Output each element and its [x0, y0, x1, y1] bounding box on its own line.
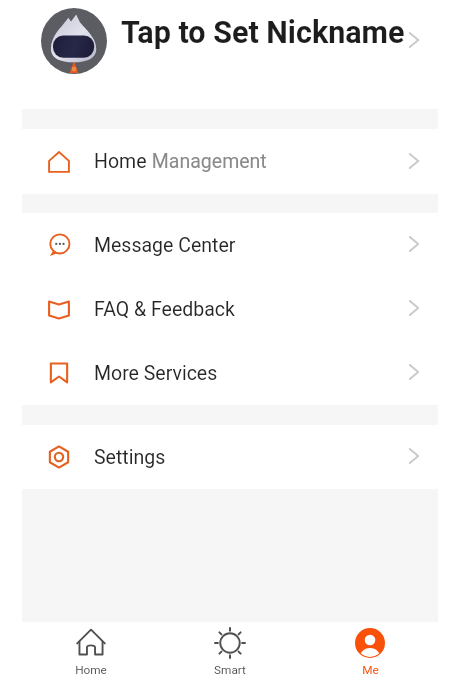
- button[interactable]: Settings: [0, 425, 461, 489]
- button[interactable]: Tap to Set Nickname: [0, 0, 461, 82]
- staticText: Smart: [214, 663, 246, 677]
- button[interactable]: Message Center: [0, 213, 461, 277]
- staticText: Message Center: [94, 234, 236, 257]
- staticText: Management: [147, 150, 267, 173]
- button[interactable]: Me: [300, 622, 440, 681]
- button[interactable]: Smart: [160, 622, 300, 681]
- staticText: Tap to Set Nickname: [121, 15, 405, 51]
- staticText: Settings: [94, 446, 166, 469]
- staticText: More Services: [94, 362, 218, 385]
- staticText: Home: [75, 663, 107, 677]
- button[interactable]: More Services: [0, 341, 461, 405]
- button[interactable]: Home: [21, 622, 160, 681]
- staticText: Home: [94, 150, 147, 173]
- button[interactable]: FAQ & Feedback: [0, 277, 461, 341]
- staticText: FAQ & Feedback: [94, 298, 235, 321]
- button[interactable]: Home: [0, 129, 461, 194]
- staticText: Me: [362, 663, 379, 677]
